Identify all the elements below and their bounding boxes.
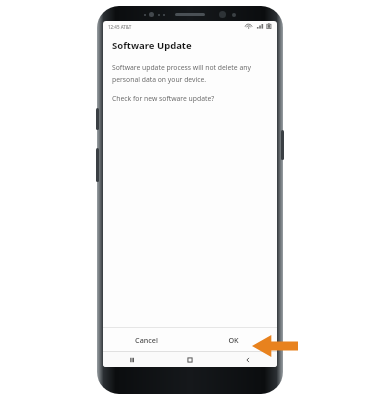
- staticText: Check for new software update?: [112, 94, 215, 103]
- staticText: OK: [228, 335, 239, 345]
- button[interactable]: OK: [190, 328, 277, 351]
- staticText: 12:45 AT&T: [108, 24, 132, 30]
- staticText: Software Update: [112, 39, 192, 52]
- other: Tap OK: [252, 335, 298, 357]
- button[interactable]: Recent apps: [103, 352, 161, 367]
- button[interactable]: Home: [161, 352, 219, 367]
- button[interactable]: Cancel: [103, 328, 190, 351]
- staticText: Software update process will not delete …: [112, 63, 251, 84]
- staticText: Cancel: [135, 335, 158, 345]
- button[interactable]: Back: [219, 352, 277, 367]
